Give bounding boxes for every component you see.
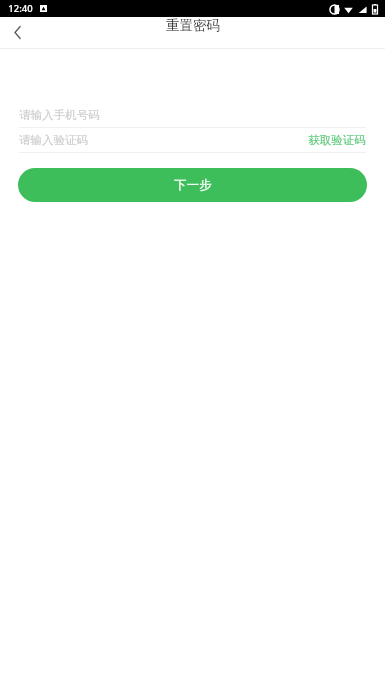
button[interactable]: 请输入验证码 bbox=[19, 128, 366, 152]
button[interactable]: 请输入手机号码 bbox=[19, 103, 366, 127]
staticText: 重置密码 bbox=[166, 17, 220, 34]
button[interactable]: 获取验证码 bbox=[308, 133, 366, 147]
button[interactable]: Back bbox=[0, 17, 34, 48]
staticText: 获取验证码 bbox=[308, 133, 366, 147]
staticText: 请输入手机号码 bbox=[19, 108, 100, 122]
button[interactable]: 下一步 bbox=[18, 168, 367, 202]
staticText: 下一步 bbox=[174, 177, 212, 193]
staticText: 请输入验证码 bbox=[19, 133, 88, 147]
staticText: 12:40 bbox=[8, 2, 33, 15]
